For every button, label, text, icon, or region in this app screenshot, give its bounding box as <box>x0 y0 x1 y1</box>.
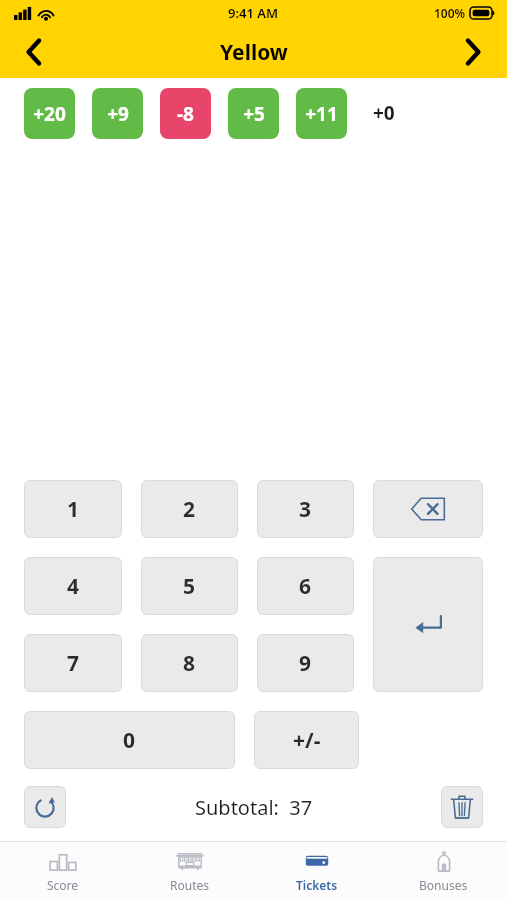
button[interactable]: Backspace <box>373 480 483 538</box>
staticText: Bonuses <box>419 877 468 893</box>
staticText: Score <box>47 877 79 893</box>
staticText: +9 <box>107 101 129 127</box>
staticText: +5 <box>243 101 265 127</box>
button[interactable]: +/- <box>254 711 359 769</box>
button[interactable]: 6 <box>257 557 354 615</box>
button[interactable]: +11 <box>296 88 347 139</box>
button[interactable]: 5 <box>141 557 238 615</box>
staticText: 1 <box>67 495 80 524</box>
staticText: -8 <box>177 101 194 127</box>
staticText: 7 <box>67 649 80 678</box>
staticText: Yellow <box>220 38 288 67</box>
button[interactable]: Tickets <box>253 842 380 900</box>
staticText: 0 <box>123 726 136 755</box>
button[interactable]: Score <box>0 842 126 900</box>
button[interactable]: Reset <box>24 786 66 828</box>
button[interactable]: 8 <box>141 634 238 692</box>
button[interactable]: Enter <box>373 557 483 692</box>
button[interactable]: +9 <box>92 88 143 139</box>
button[interactable]: +0 <box>373 100 395 126</box>
button[interactable]: 0 <box>24 711 235 769</box>
staticText: +/- <box>293 726 321 755</box>
staticText: 4 <box>67 572 80 601</box>
staticText: Subtotal: 37 <box>195 794 313 821</box>
button[interactable]: 9 <box>257 634 354 692</box>
button[interactable]: -8 <box>160 88 211 139</box>
button[interactable]: Previous color <box>8 26 60 78</box>
staticText: 100% <box>434 5 466 21</box>
staticText: 9 <box>299 649 312 678</box>
button[interactable]: 4 <box>24 557 122 615</box>
button[interactable]: Delete <box>441 786 483 828</box>
staticText: 2 <box>183 495 196 524</box>
staticText: Routes <box>170 877 209 893</box>
button[interactable]: 3 <box>257 480 354 538</box>
staticText: Tickets <box>296 877 338 893</box>
button[interactable]: +20 <box>24 88 75 139</box>
button[interactable]: 2 <box>141 480 238 538</box>
staticText: 8 <box>183 649 196 678</box>
staticText: +11 <box>305 101 338 127</box>
staticText: 5 <box>183 572 196 601</box>
button[interactable]: 1 <box>24 480 122 538</box>
staticText: 9:41 AM <box>228 4 279 22</box>
staticText: 6 <box>299 572 312 601</box>
button[interactable]: Routes <box>126 842 253 900</box>
button[interactable]: +5 <box>228 88 279 139</box>
button[interactable]: Bonuses <box>380 842 507 900</box>
button[interactable]: 7 <box>24 634 122 692</box>
button[interactable]: Next color <box>447 26 499 78</box>
staticText: +20 <box>33 101 66 127</box>
staticText: 3 <box>299 495 312 524</box>
